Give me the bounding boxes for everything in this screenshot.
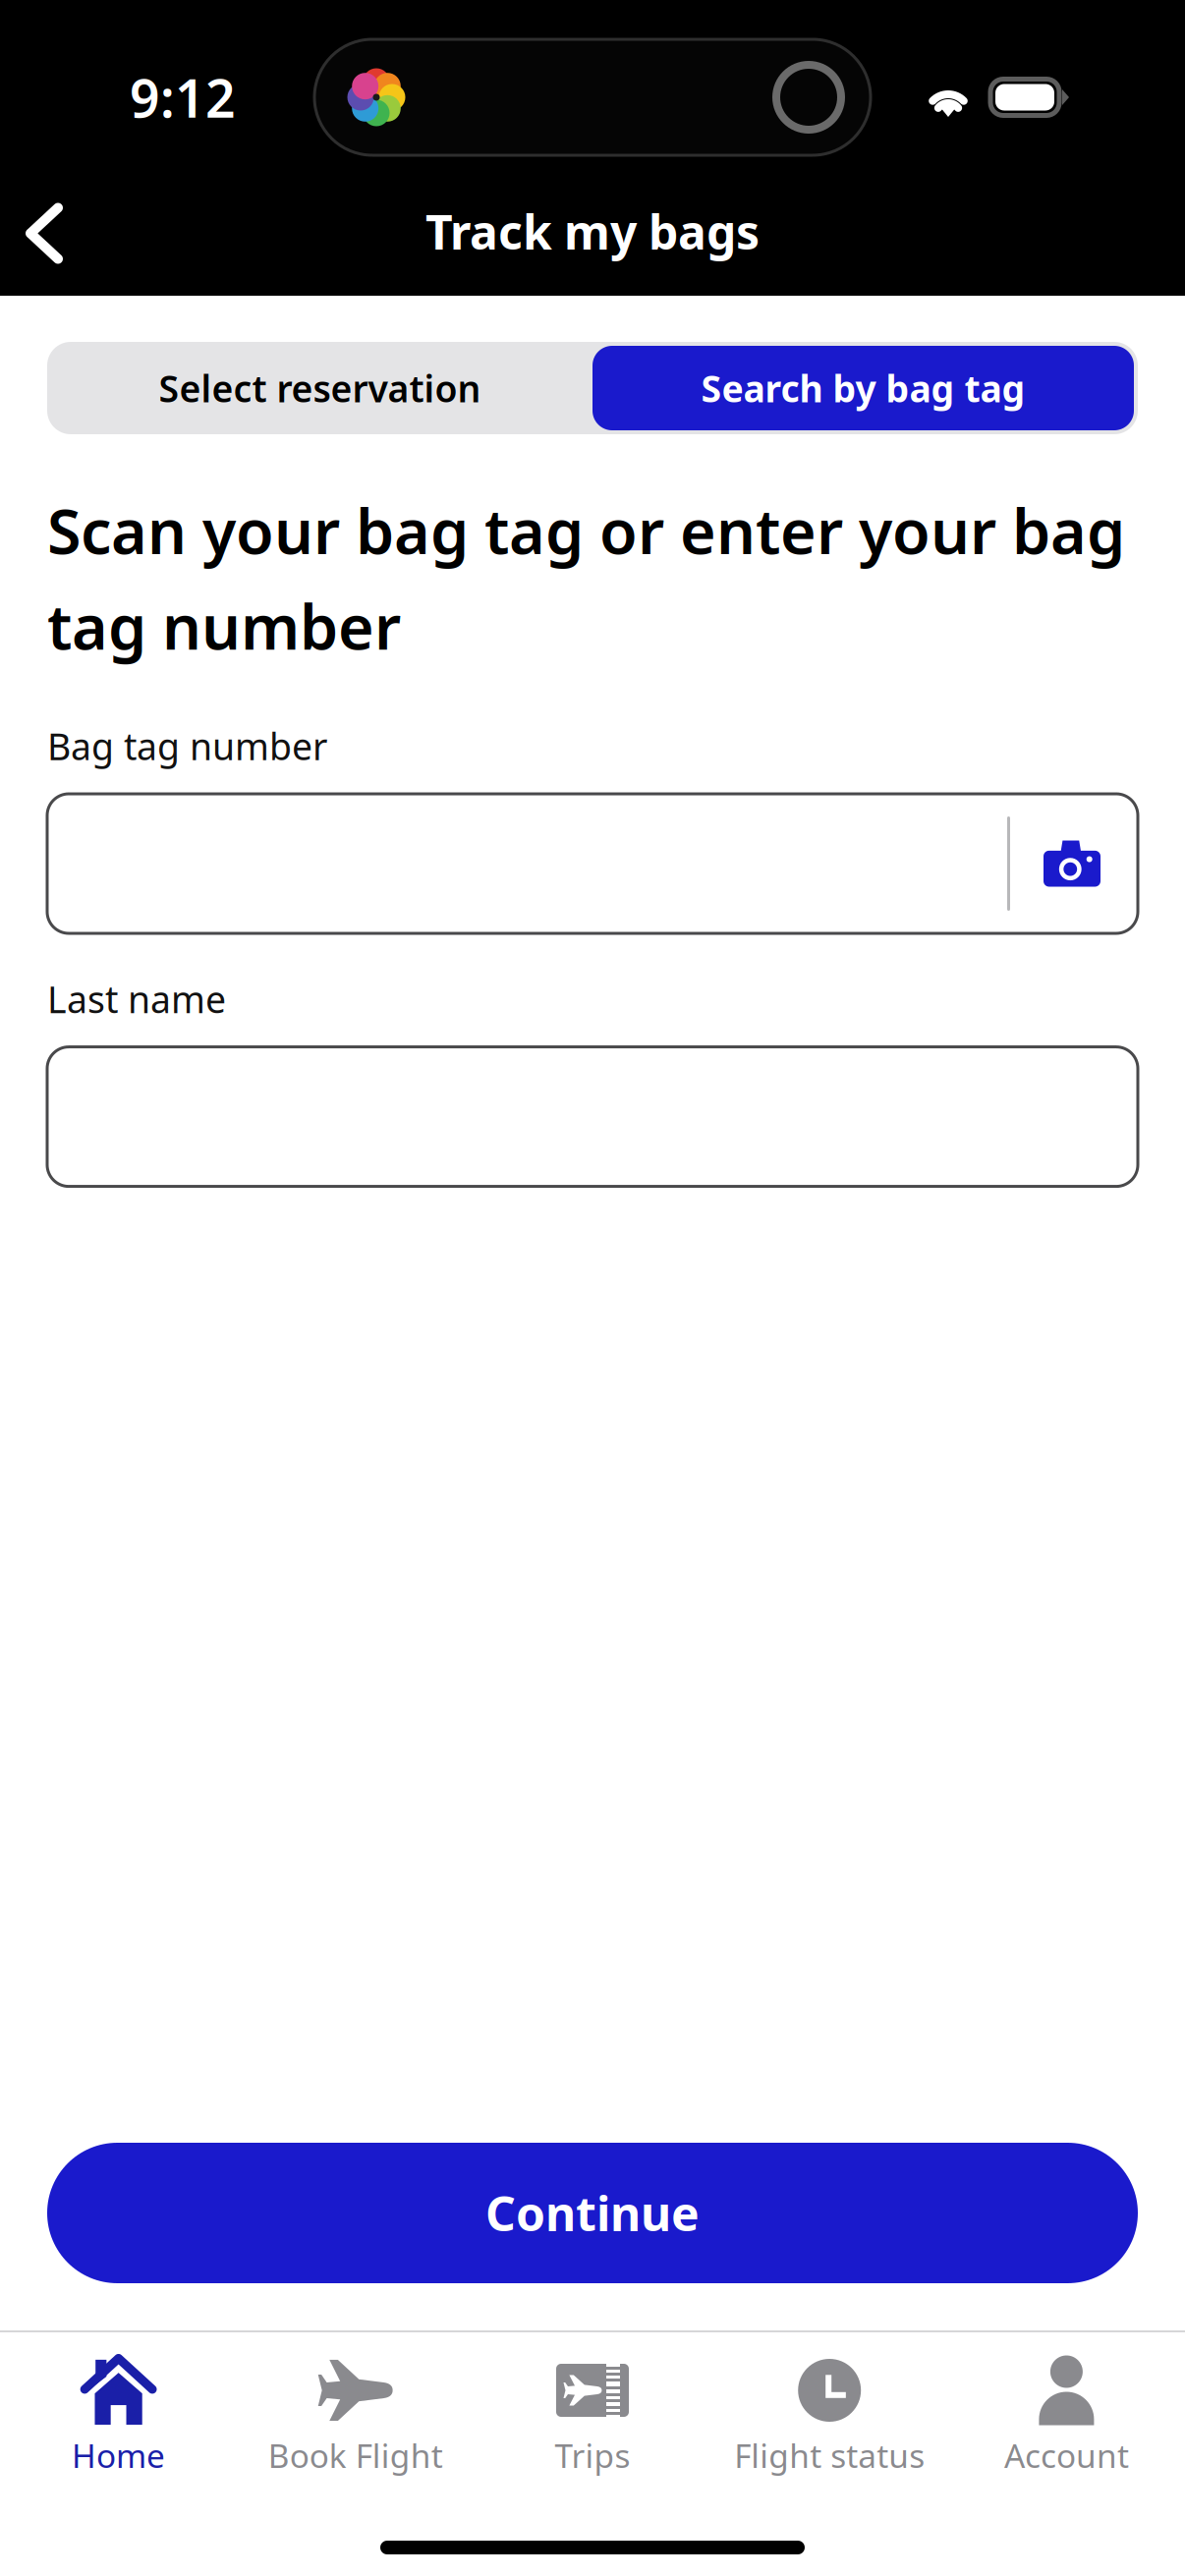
button[interactable]: Book Flight [237,2332,474,2485]
staticText: Continue [485,2182,700,2244]
button[interactable]: Flight status [711,2332,948,2485]
staticText: Account [1004,2434,1129,2477]
button[interactable]: Back [0,181,92,293]
staticText: Scan your bag tag or enter your bag tag … [47,489,1125,666]
staticText: Search by bag tag [701,364,1025,412]
button[interactable]: Continue [47,2143,1138,2283]
staticText: Book Flight [268,2434,443,2477]
staticText: 9:12 [130,62,236,132]
button[interactable]: Search by bag tag [592,346,1138,430]
staticText: Home [72,2434,165,2477]
staticText: Bag tag number [47,722,327,770]
staticText: Select reservation [159,364,481,412]
button[interactable]: Trips [474,2332,711,2485]
button[interactable]: Select reservation [47,342,592,434]
staticText: Track my bags [425,200,760,263]
button[interactable]: Scan bag tag [1010,797,1134,930]
staticText: Trips [555,2434,630,2477]
staticText: Last name [47,975,226,1023]
button[interactable]: Home [0,2332,237,2485]
button[interactable]: Account [948,2332,1185,2485]
staticText: Flight status [734,2434,925,2477]
